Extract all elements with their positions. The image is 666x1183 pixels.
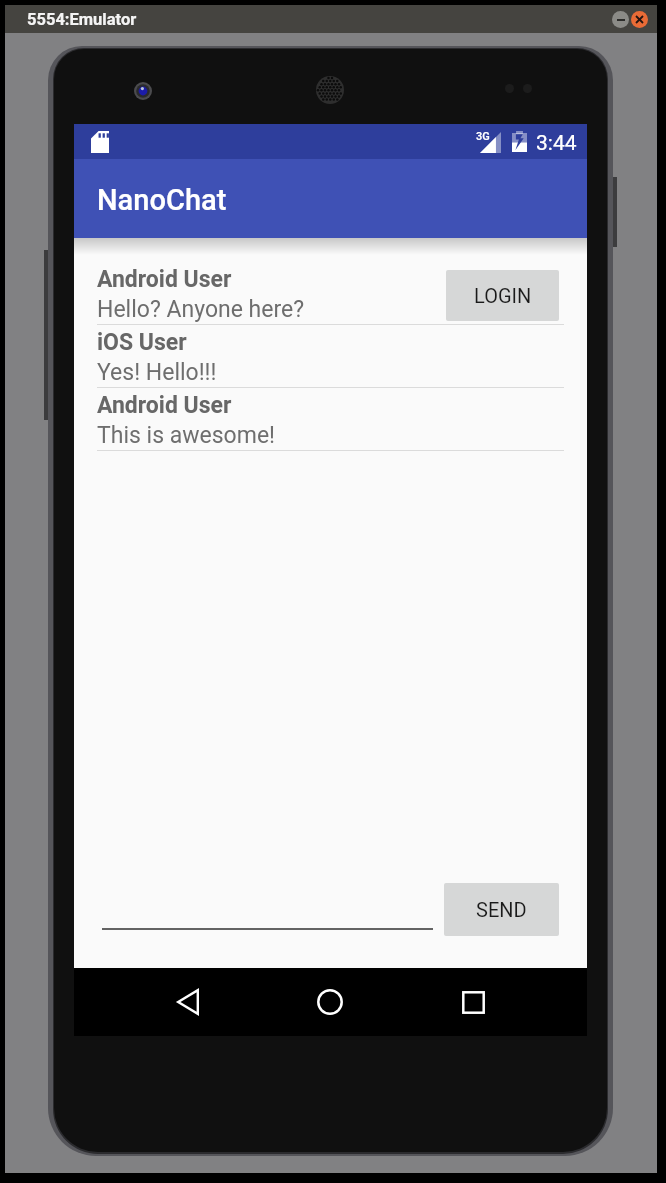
button[interactable]: Close	[631, 11, 648, 28]
button[interactable]: Minimize	[612, 11, 629, 28]
button[interactable]: LOGIN	[446, 270, 559, 321]
button[interactable]: Home	[290, 968, 370, 1036]
button[interactable]: SEND	[444, 883, 559, 936]
button[interactable]: Recents	[433, 968, 513, 1036]
staticText: Android User	[97, 392, 232, 419]
staticText: SEND	[476, 898, 527, 921]
staticText: This is awesome!	[97, 422, 276, 449]
button[interactable]: Android User	[74, 262, 587, 325]
staticText: iOS User	[97, 329, 187, 356]
button[interactable]: Back	[148, 968, 228, 1036]
button[interactable]: Android User	[74, 388, 587, 451]
staticText: 3G	[476, 130, 490, 143]
button[interactable]: iOS User	[74, 325, 587, 388]
staticText: Yes! Hello!!!	[97, 359, 217, 386]
staticText: NanoChat	[97, 183, 227, 217]
staticText: Android User	[97, 266, 232, 293]
staticText: LOGIN	[474, 284, 532, 307]
staticText: 5554:Emulator	[27, 10, 137, 29]
staticText: 3:44	[536, 131, 577, 156]
staticText: Hello? Anyone here?	[97, 296, 305, 323]
